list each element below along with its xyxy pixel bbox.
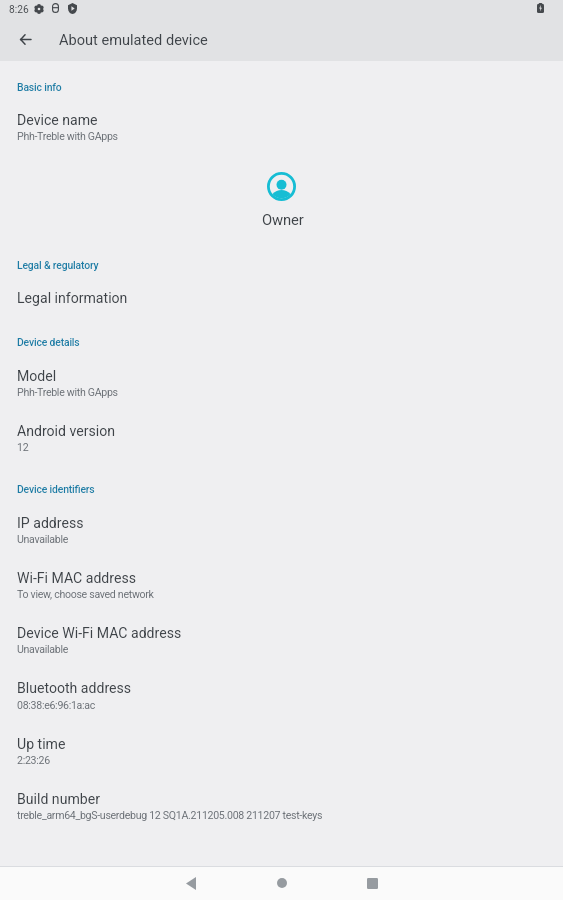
staticText: To view, choose saved network [17,588,154,600]
staticText: Owner [262,211,304,228]
button[interactable]: Navigate up [1,15,49,63]
staticText: Legal & regulatory [17,259,99,271]
staticText: Device details [17,336,80,348]
staticText: Phh-Treble with GApps [17,386,118,398]
button[interactable] [0,668,563,719]
staticText: Build number [17,791,100,808]
button[interactable] [0,278,563,317]
button[interactable] [0,356,563,407]
staticText: Android version [17,423,115,440]
staticText: Unavailable [17,533,68,545]
button[interactable] [0,502,563,553]
staticText: Bluetooth address [17,680,132,697]
button[interactable] [0,723,563,774]
staticText: IP address [17,515,84,532]
button[interactable] [0,558,563,609]
staticText: Unavailable [17,643,68,655]
button[interactable] [0,613,563,664]
staticText: Device Wi-Fi MAC address [17,625,182,642]
staticText: Phh-Treble with GApps [17,130,118,142]
staticText: 8:26 [9,4,29,16]
button[interactable]: Home [258,859,306,900]
staticText: Basic info [17,81,62,93]
button[interactable] [0,779,563,830]
staticText: Up time [17,736,66,753]
button[interactable]: Back [167,859,215,900]
staticText: Legal information [17,290,128,307]
button[interactable] [0,411,563,462]
staticText: 2:23:26 [17,754,50,766]
staticText: Device name [17,112,98,129]
staticText: 08:38:e6:96:1a:ac [17,699,96,711]
staticText: Wi-Fi MAC address [17,570,136,587]
button[interactable] [0,100,563,151]
button[interactable]: Recent apps [348,859,396,900]
staticText: Device identifiers [17,483,95,495]
staticText: treble_arm64_bgS-userdebug 12 SQ1A.21120… [17,809,323,821]
staticText: About emulated device [59,31,208,48]
staticText: Model [17,368,57,385]
staticText: 12 [17,441,29,453]
